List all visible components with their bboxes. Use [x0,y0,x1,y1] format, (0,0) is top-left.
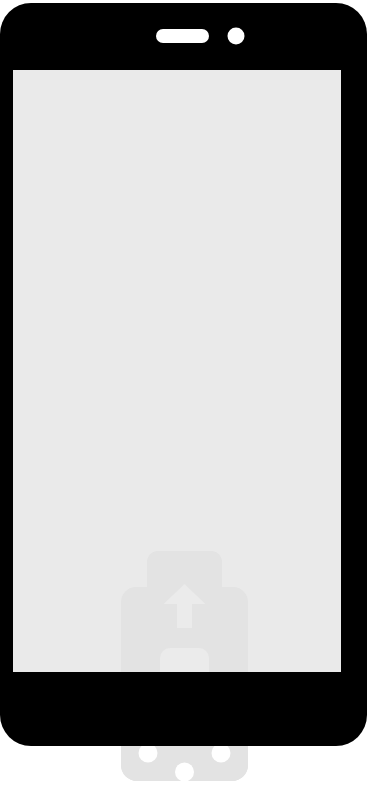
other: Smartphone printing illustration [0,0,367,789]
